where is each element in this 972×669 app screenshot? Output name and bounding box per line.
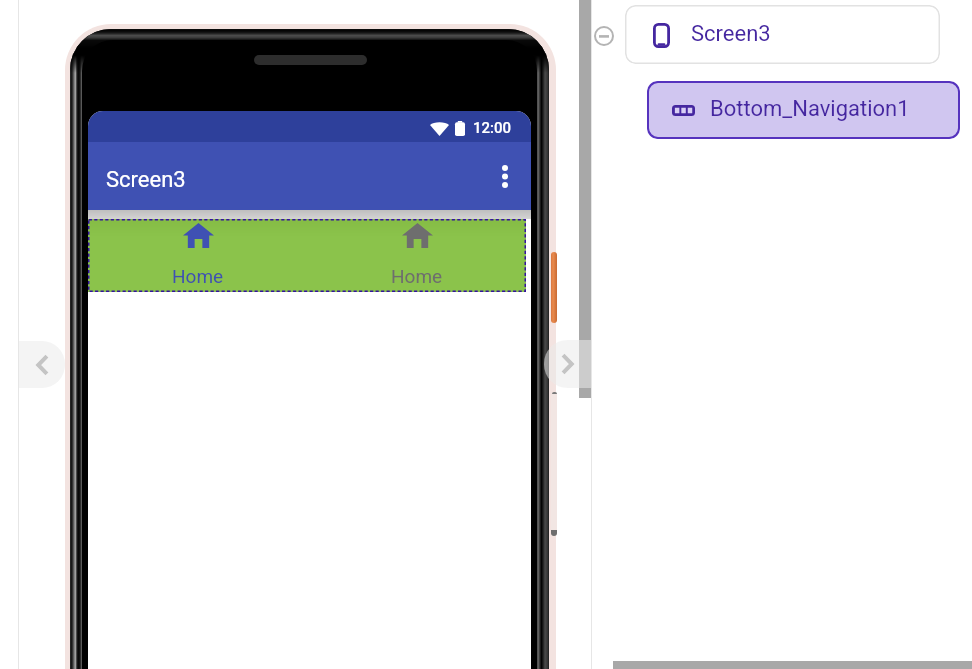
button[interactable]: Collapse node <box>594 26 614 46</box>
button[interactable]: Bottom_Navigation1 <box>647 81 960 139</box>
staticText: Screen3 <box>691 21 771 47</box>
staticText: Home <box>172 265 224 287</box>
staticText: Screen3 <box>106 167 186 193</box>
button[interactable]: Screen3 <box>625 5 940 64</box>
button[interactable]: Home <box>307 219 526 292</box>
staticText: 12:00 <box>473 119 512 137</box>
button[interactable]: Next screen <box>544 340 591 388</box>
button[interactable]: Home <box>88 219 307 292</box>
button[interactable]: Previous screen <box>19 341 65 388</box>
button[interactable]: More options <box>485 156 525 196</box>
staticText: Home <box>391 265 443 287</box>
staticText: Bottom_Navigation1 <box>710 96 910 122</box>
